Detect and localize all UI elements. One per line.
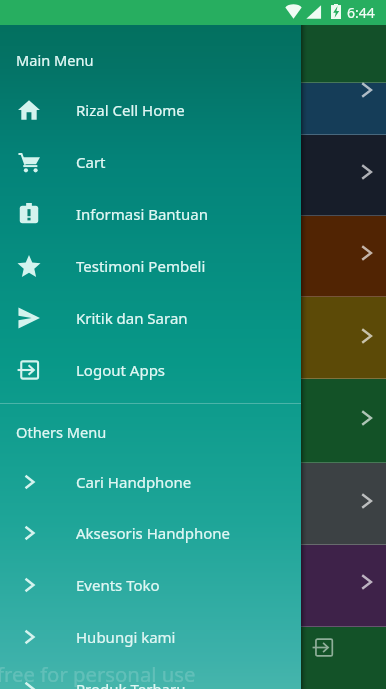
- button[interactable]: Events Toko: [0, 559, 301, 611]
- button[interactable]: Testimoni Pembeli: [0, 240, 301, 292]
- button[interactable]: Logout Apps: [0, 344, 301, 396]
- staticText: Hubungi kami: [76, 627, 176, 647]
- staticText: Main Menu: [16, 50, 94, 70]
- staticText: Produk Terbaru: [76, 679, 186, 689]
- staticText: free for personal use: [0, 660, 196, 688]
- button[interactable]: Open item: [357, 491, 377, 511]
- staticText: Informasi Bantuan: [76, 204, 208, 224]
- button[interactable]: Open item: [357, 572, 377, 592]
- staticText: Cart: [76, 152, 106, 172]
- button[interactable]: Kritik dan Saran: [0, 292, 301, 344]
- button[interactable]: Open item: [357, 326, 377, 346]
- button[interactable]: Open item: [357, 162, 377, 182]
- staticText: Rizal Cell Home: [76, 100, 185, 120]
- button[interactable]: Produk Terbaru: [0, 663, 301, 689]
- button[interactable]: Cart: [0, 136, 301, 188]
- button[interactable]: Open item: [357, 80, 377, 100]
- staticText: Cari Handphone: [76, 472, 192, 492]
- button[interactable]: Hubungi kami: [0, 611, 301, 663]
- button[interactable]: Rizal Cell Home: [0, 84, 301, 136]
- staticText: Logout Apps: [76, 360, 166, 380]
- button[interactable]: Informasi Bantuan: [0, 188, 301, 240]
- button[interactable]: Open item: [357, 408, 377, 428]
- staticText: Aksesoris Handphone: [76, 523, 230, 543]
- staticText: Events Toko: [76, 575, 160, 595]
- staticText: Others Menu: [16, 422, 107, 442]
- staticText: 6:44: [347, 3, 375, 22]
- button[interactable]: Cari Handphone: [0, 456, 301, 508]
- staticText: Kritik dan Saran: [76, 308, 188, 328]
- button[interactable]: Logout: [313, 637, 334, 658]
- staticText: Testimoni Pembeli: [76, 256, 206, 276]
- button[interactable]: Open item: [357, 243, 377, 263]
- button[interactable]: Aksesoris Handphone: [0, 507, 301, 559]
